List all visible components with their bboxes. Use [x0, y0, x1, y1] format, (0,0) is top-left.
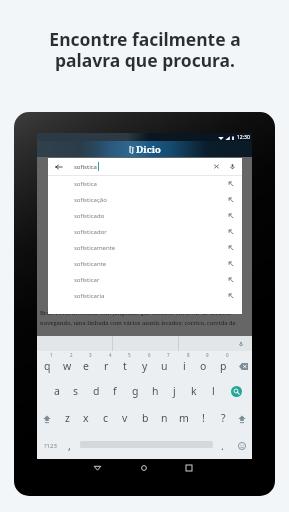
button[interactable]: b	[135, 404, 155, 431]
staticText: g	[132, 384, 139, 398]
staticText: u	[161, 359, 168, 373]
button[interactable]: sofisticaria	[48, 288, 242, 304]
button[interactable]: ,	[61, 432, 77, 459]
staticText: l	[212, 384, 215, 398]
button[interactable]: sofisticado	[48, 208, 242, 224]
staticText: sofisticar	[74, 276, 100, 284]
button[interactable]: 1	[37, 351, 57, 378]
staticText: f	[113, 384, 117, 398]
button[interactable]: 5	[115, 351, 135, 378]
button[interactable]: !	[193, 404, 213, 431]
staticText: k	[191, 384, 197, 398]
staticText: t	[123, 359, 127, 373]
button[interactable]: sofistica	[48, 176, 242, 192]
button[interactable]: Backspace	[233, 351, 253, 378]
button[interactable]: Recent apps	[174, 459, 204, 476]
staticText: Bras. Pesca artesanal com jangadas, que …	[40, 309, 231, 317]
button[interactable]: Voice search	[229, 163, 236, 170]
button[interactable]: h	[145, 377, 165, 404]
staticText: sofistica	[74, 180, 97, 188]
staticText: ,	[68, 439, 71, 453]
button[interactable]: n	[154, 404, 174, 431]
staticText: e	[83, 359, 89, 373]
button[interactable]: z	[57, 404, 77, 431]
button[interactable]: Shift	[37, 405, 57, 432]
staticText: 12:30	[237, 134, 250, 141]
staticText: 6	[148, 352, 151, 358]
staticText: [J	[129, 145, 135, 155]
staticText: ?	[221, 411, 226, 425]
button[interactable]: Voice input	[238, 341, 244, 347]
button[interactable]: 7	[154, 351, 174, 378]
staticText: Dicio	[136, 143, 161, 156]
staticText: o	[200, 359, 207, 373]
button[interactable]: c	[96, 404, 116, 431]
button[interactable]: Shift	[232, 405, 252, 432]
staticText: 3	[89, 352, 92, 358]
button[interactable]: 0	[213, 351, 233, 378]
staticText: c	[103, 411, 109, 425]
button[interactable]: s	[66, 377, 86, 404]
button[interactable]: 3	[76, 351, 96, 378]
button[interactable]: ?	[213, 404, 233, 431]
button[interactable]: v	[115, 404, 135, 431]
staticText: 4	[109, 352, 112, 358]
staticText: .	[221, 439, 224, 453]
staticText: n	[161, 411, 168, 425]
staticText: sofisticamente	[74, 244, 116, 252]
button[interactable]: k	[184, 377, 204, 404]
button[interactable]: sofisticador	[48, 224, 242, 240]
staticText: h	[152, 384, 159, 398]
staticText: a	[54, 384, 60, 398]
staticText: i	[183, 359, 186, 373]
button[interactable]: 9	[193, 351, 213, 378]
button[interactable]: g	[125, 377, 145, 404]
button[interactable]: sofisticar	[48, 272, 242, 288]
button[interactable]: Back	[82, 459, 112, 476]
button[interactable]: m	[174, 404, 194, 431]
button[interactable]: 6	[135, 351, 155, 378]
staticText: 1	[50, 352, 53, 358]
staticText: v	[122, 411, 128, 425]
button[interactable]: Home	[129, 459, 159, 476]
staticText: 2	[70, 352, 73, 358]
staticText: Encontre facilmente a palavra que procur…	[49, 27, 241, 72]
button[interactable]: f	[105, 377, 125, 404]
button[interactable]: a	[47, 377, 67, 404]
staticText: s	[73, 384, 79, 398]
staticText: 8	[187, 352, 190, 358]
staticText: sofisticado	[74, 212, 105, 220]
button[interactable]: 2	[57, 351, 77, 378]
button[interactable]: Emoji	[232, 432, 252, 459]
button[interactable]: sofisticante	[48, 256, 242, 272]
staticText: r	[104, 359, 109, 373]
button[interactable]: .	[214, 432, 230, 459]
staticText: sofisticaria	[74, 292, 105, 300]
button[interactable]: x	[76, 404, 96, 431]
staticText: 7	[167, 352, 170, 358]
staticText: 5	[128, 352, 131, 358]
staticText: navegando, uma linhada com vários anzóis…	[40, 319, 236, 327]
staticText: y	[142, 359, 148, 373]
button[interactable]: j	[164, 377, 184, 404]
staticText: w	[63, 359, 72, 373]
staticText: sofistica	[74, 163, 97, 171]
button[interactable]: d	[86, 377, 106, 404]
staticText: b	[142, 411, 149, 425]
button[interactable]: ?123	[38, 432, 62, 459]
button[interactable]: Back	[48, 158, 242, 175]
button[interactable]: 8	[174, 351, 194, 378]
button[interactable]: sofisticamente	[48, 240, 242, 256]
button[interactable]: Clear	[213, 163, 220, 170]
button[interactable]: 4	[96, 351, 116, 378]
staticText: sofisticação	[74, 196, 107, 204]
button[interactable]: Search	[226, 378, 246, 405]
staticText: 9	[206, 352, 209, 358]
staticText: sofisticante	[74, 260, 107, 268]
button[interactable]: l	[203, 377, 223, 404]
staticText: m	[179, 411, 189, 425]
button[interactable]: sofisticação	[48, 192, 242, 208]
staticText: !	[202, 411, 205, 425]
button[interactable]: Back	[55, 163, 63, 171]
